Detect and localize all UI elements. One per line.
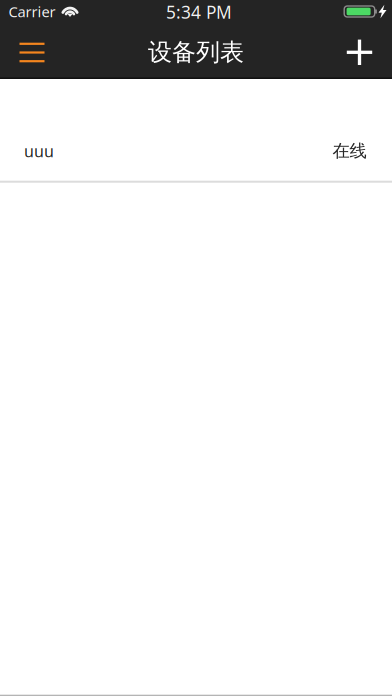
staticText: Carrier	[8, 2, 55, 21]
staticText: 设备列表	[148, 38, 244, 67]
button[interactable]: uuu	[0, 122, 392, 181]
staticText: uuu	[24, 140, 54, 162]
button[interactable]: Menu	[8, 25, 56, 77]
staticText: 在线	[332, 140, 366, 162]
button[interactable]: Add device	[335, 25, 383, 77]
staticText: 5:34 PM	[166, 0, 232, 23]
